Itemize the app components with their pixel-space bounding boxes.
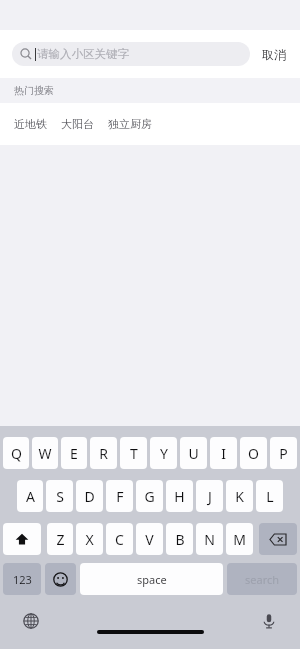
staticText: O bbox=[248, 444, 259, 463]
button[interactable]: A bbox=[17, 480, 43, 512]
button[interactable]: W bbox=[32, 437, 58, 469]
staticText: 独立厨房 bbox=[108, 117, 152, 131]
staticText: F bbox=[116, 487, 124, 506]
staticText: W bbox=[38, 444, 52, 463]
button[interactable]: T bbox=[120, 437, 147, 469]
staticText: D bbox=[84, 487, 95, 506]
staticText: search bbox=[245, 572, 280, 587]
button[interactable]: J bbox=[196, 480, 223, 512]
button[interactable]: H bbox=[166, 480, 193, 512]
button[interactable]: L bbox=[256, 480, 283, 512]
button[interactable]: E bbox=[61, 437, 87, 469]
button[interactable]: Shift bbox=[3, 523, 41, 555]
button[interactable]: Z bbox=[47, 523, 73, 555]
staticText: N bbox=[204, 530, 215, 549]
button[interactable]: D bbox=[76, 480, 103, 512]
button[interactable]: 大阳台 bbox=[61, 113, 108, 135]
staticText: H bbox=[174, 487, 185, 506]
button[interactable]: Q bbox=[3, 437, 29, 469]
button[interactable]: V bbox=[136, 523, 163, 555]
staticText: Y bbox=[160, 444, 168, 463]
staticText: I bbox=[221, 444, 226, 463]
button[interactable]: Dictation bbox=[256, 608, 282, 634]
staticText: 热门搜索 bbox=[14, 84, 54, 97]
button[interactable]: C bbox=[106, 523, 133, 555]
staticText: A bbox=[26, 487, 35, 506]
staticText: 123 bbox=[13, 572, 32, 587]
button[interactable]: 独立厨房 bbox=[108, 113, 166, 135]
button[interactable]: space bbox=[80, 563, 223, 595]
button[interactable]: Emoji bbox=[45, 563, 76, 595]
button[interactable]: B bbox=[166, 523, 193, 555]
button[interactable]: O bbox=[240, 437, 267, 469]
button[interactable]: I bbox=[210, 437, 237, 469]
button[interactable]: N bbox=[196, 523, 223, 555]
button[interactable]: 请输入小区关键字 bbox=[12, 42, 250, 66]
button[interactable]: R bbox=[90, 437, 117, 469]
staticText: 近地铁 bbox=[14, 117, 47, 131]
button[interactable]: F bbox=[106, 480, 133, 512]
button[interactable]: M bbox=[226, 523, 253, 555]
staticText: G bbox=[144, 487, 155, 506]
button[interactable]: K bbox=[226, 480, 253, 512]
staticText: C bbox=[115, 530, 124, 549]
staticText: R bbox=[99, 444, 108, 463]
staticText: Z bbox=[56, 530, 65, 549]
staticText: T bbox=[130, 444, 138, 463]
staticText: P bbox=[279, 444, 288, 463]
staticText: U bbox=[188, 444, 199, 463]
staticText: V bbox=[145, 530, 154, 549]
button[interactable]: Change keyboard language bbox=[18, 608, 44, 634]
staticText: space bbox=[137, 572, 167, 587]
staticText: 取消 bbox=[262, 47, 286, 62]
staticText: E bbox=[70, 444, 78, 463]
button[interactable]: G bbox=[136, 480, 163, 512]
button[interactable]: X bbox=[76, 523, 103, 555]
button[interactable]: search bbox=[227, 563, 297, 595]
staticText: 请输入小区关键字 bbox=[37, 47, 129, 61]
staticText: L bbox=[266, 487, 274, 506]
staticText: B bbox=[175, 530, 185, 549]
button[interactable]: U bbox=[180, 437, 207, 469]
button[interactable]: 123 bbox=[3, 563, 41, 595]
button[interactable]: 近地铁 bbox=[14, 113, 61, 135]
button[interactable]: Y bbox=[150, 437, 177, 469]
button[interactable]: Backspace bbox=[259, 523, 297, 555]
staticText: J bbox=[208, 487, 212, 506]
button[interactable]: 取消 bbox=[260, 43, 288, 66]
staticText: X bbox=[85, 530, 94, 549]
button[interactable]: S bbox=[46, 480, 73, 512]
staticText: S bbox=[56, 487, 64, 506]
staticText: Q bbox=[11, 444, 22, 463]
staticText: K bbox=[235, 487, 244, 506]
staticText: 大阳台 bbox=[61, 117, 94, 131]
staticText: M bbox=[233, 530, 246, 549]
button[interactable]: P bbox=[270, 437, 297, 469]
